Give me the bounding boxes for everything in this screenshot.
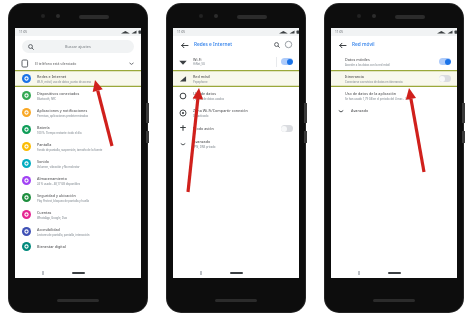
staticText: Uso de datos de la aplicación (345, 91, 397, 96)
button[interactable]: Datos móviles (331, 53, 457, 70)
staticText: Zona Wi-Fi/Compartir conexión (193, 108, 248, 113)
staticText: Acceder a los datos con la red móvil (345, 63, 390, 67)
staticText: Buscar ajustes (65, 44, 91, 49)
staticText: Desactivado (193, 114, 209, 118)
staticText: Itinerancia (345, 74, 364, 79)
staticText: VPN, DNS privado (193, 145, 216, 149)
staticText: Batería (37, 125, 50, 130)
button[interactable]: Sonido (15, 155, 141, 172)
button[interactable]: Seguridad y ubicación (15, 189, 141, 206)
staticText: Lectores de pantalla, pantalla, interacc… (37, 233, 90, 237)
staticText: Fondo de pantalla, suspensión, tamaño de… (37, 148, 103, 152)
button[interactable]: Batería (15, 121, 141, 138)
button[interactable]: Pantalla (15, 138, 141, 155)
staticText: Redes e Internet (194, 41, 233, 48)
button[interactable]: Back (337, 40, 347, 50)
button[interactable]: Modo avión (173, 121, 299, 135)
button[interactable]: Back (179, 40, 189, 50)
staticText: Avanzado (193, 139, 211, 144)
button[interactable]: Modo avión (281, 125, 293, 132)
staticText: Avanzado (351, 108, 369, 113)
staticText: HiNet_5G (193, 62, 205, 66)
button[interactable]: Datos móviles (439, 58, 451, 65)
button[interactable]: Bienestar digital (15, 240, 141, 252)
staticText: Pepephone (193, 80, 208, 84)
staticText: Play Protect, bloqueo de pantalla y huel… (37, 199, 90, 203)
staticText: Seguridad y ubicación (37, 193, 76, 198)
button[interactable]: Uso de datos de la aplicación (331, 87, 457, 104)
staticText: WhatsApp, Google, Duo (37, 216, 68, 220)
staticText: Aplicaciones y notificaciones (37, 108, 88, 113)
button[interactable]: Red móvil (173, 70, 299, 87)
button[interactable]: Wi-Fi (179, 53, 293, 70)
staticText: Red móvil (352, 41, 375, 48)
staticText: Accesibilidad (37, 227, 60, 232)
button[interactable]: Wi-Fi toggle (281, 58, 293, 65)
staticText: 1,29 GB de datos usados (193, 97, 225, 101)
button[interactable]: Almacenamiento (15, 172, 141, 189)
staticText: 11:05 (19, 30, 28, 34)
button[interactable]: Uso de datos (173, 87, 299, 104)
staticText: Bluetooth, NFC (37, 97, 57, 101)
button[interactable]: Avanzado (173, 135, 299, 152)
staticText: Bienestar digital (37, 244, 66, 249)
button[interactable]: El teléfono está silenciado (22, 57, 134, 70)
button[interactable]: Accesibilidad (15, 223, 141, 240)
button[interactable]: Avanzado (331, 104, 457, 117)
staticText: Uso de datos (193, 91, 216, 96)
staticText: Almacenamiento (37, 176, 67, 181)
staticText: 24 % usado - 48,17 GB disponibles (37, 182, 81, 186)
button[interactable]: Itinerancia (331, 70, 457, 87)
staticText: Volumen, vibración y No molestar (37, 165, 80, 169)
button[interactable]: Redes e Internet (15, 70, 141, 87)
staticText: Permisos, aplicaciones predeterminadas (37, 114, 89, 118)
staticText: Pantalla (37, 142, 52, 147)
staticText: Cuentas (37, 210, 52, 215)
staticText: Modo avión (193, 126, 214, 131)
staticText: Datos móviles (345, 57, 370, 62)
button[interactable]: Search (22, 40, 134, 53)
staticText: Se han usado 1,79 GB en el periodo del 4… (345, 97, 412, 101)
staticText: Redes e Internet (37, 74, 67, 79)
staticText: Wi-Fi (193, 57, 202, 62)
button[interactable]: Search (272, 40, 281, 49)
staticText: Conectarse a servicios de datos en itine… (345, 80, 403, 84)
staticText: Red móvil (193, 74, 211, 79)
staticText: 100 %. Tiempo restante: todo el día (37, 131, 82, 135)
button[interactable]: Dispositivos conectados (15, 87, 141, 104)
staticText: 11:05 (335, 30, 344, 34)
other: Search (28, 44, 34, 50)
staticText: Wi-Fi, móvil, uso de datos, punto de acc… (37, 80, 92, 84)
button[interactable]: Aplicaciones y notificaciones (15, 104, 141, 121)
button[interactable]: Help (284, 40, 293, 49)
staticText: Dispositivos conectados (37, 91, 80, 96)
button[interactable]: Zona Wi-Fi/Compartir conexión (173, 104, 299, 121)
button[interactable]: Itinerancia (439, 75, 451, 82)
staticText: 11:05 (177, 30, 186, 34)
staticText: Sonido (37, 159, 50, 164)
button[interactable]: Cuentas (15, 206, 141, 223)
staticText: El teléfono está silenciado (35, 61, 77, 66)
